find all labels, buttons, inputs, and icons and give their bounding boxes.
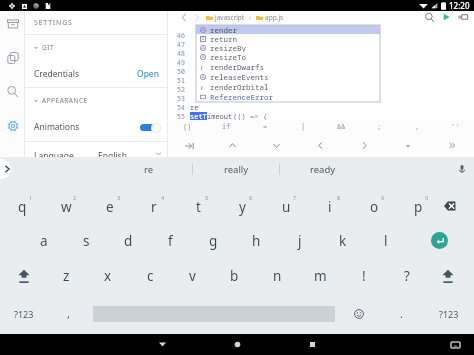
button[interactable]: Backspace xyxy=(444,201,457,211)
button[interactable]: ; xyxy=(360,120,398,134)
button[interactable]: u xyxy=(264,188,308,223)
staticText: 52 xyxy=(177,85,185,94)
button[interactable]: Language xyxy=(25,142,168,157)
button[interactable]: . xyxy=(380,293,423,334)
button[interactable]: Files xyxy=(2,47,23,68)
staticText: , xyxy=(67,306,70,321)
button[interactable]: '' xyxy=(436,120,474,134)
button[interactable]: Search xyxy=(2,81,23,102)
button[interactable]: Shift xyxy=(437,265,459,287)
button[interactable]: Home xyxy=(220,334,254,355)
button[interactable]: More suggestions xyxy=(0,159,11,179)
button[interactable]: w xyxy=(44,188,88,223)
button[interactable]: && xyxy=(322,120,360,134)
button[interactable]: c xyxy=(129,258,171,293)
staticText: e xyxy=(106,198,114,216)
button[interactable]: Credentials xyxy=(25,60,168,87)
button[interactable]: Connect device xyxy=(456,11,469,23)
button[interactable]: b xyxy=(213,258,256,293)
button[interactable]: Recent apps xyxy=(295,334,329,355)
button[interactable]: Tab xyxy=(168,134,211,157)
button[interactable]: APPEARANCE xyxy=(25,88,168,113)
button[interactable]: ! xyxy=(342,258,385,293)
staticText: p xyxy=(414,198,423,216)
staticText: English xyxy=(98,150,127,157)
button[interactable]: f xyxy=(149,223,192,258)
button[interactable]: | xyxy=(284,120,322,134)
button[interactable]: if xyxy=(207,120,246,134)
button[interactable]: Settings xyxy=(2,115,23,136)
button[interactable]: Animations xyxy=(25,113,168,141)
button[interactable]: Back xyxy=(145,334,179,355)
staticText: imeout xyxy=(207,112,233,120)
button[interactable]: Back xyxy=(178,12,189,23)
button[interactable]: ready xyxy=(280,157,366,181)
button[interactable]: l xyxy=(364,223,407,258)
button[interactable]: n xyxy=(256,258,299,293)
button[interactable]: s xyxy=(65,223,107,258)
staticText: really xyxy=(224,163,249,176)
button[interactable]: render xyxy=(196,25,380,34)
button[interactable]: Space xyxy=(90,293,338,334)
button[interactable]: h xyxy=(235,223,278,258)
staticText: ? xyxy=(404,267,410,285)
button[interactable]: really xyxy=(193,157,279,181)
staticText: . xyxy=(400,306,403,321)
button[interactable]: Expand xyxy=(430,134,474,157)
button[interactable]: GIT xyxy=(25,35,168,60)
button[interactable]: ? xyxy=(385,258,428,293)
button[interactable]: q xyxy=(0,188,44,223)
button[interactable]: () xyxy=(168,120,207,134)
staticText: () xyxy=(183,122,192,132)
staticText: 54 xyxy=(177,103,185,112)
button[interactable]: app.js xyxy=(256,13,284,22)
button[interactable]: releaseEvents xyxy=(196,72,380,82)
button[interactable]: Move right xyxy=(342,134,386,157)
button[interactable]: Move down xyxy=(254,134,298,157)
button[interactable]: Voice input xyxy=(455,162,469,176)
button[interactable]: o xyxy=(352,188,396,223)
button[interactable]: r xyxy=(132,188,176,223)
button[interactable]: e xyxy=(88,188,132,223)
button[interactable]: a xyxy=(23,223,65,258)
button[interactable]: Run xyxy=(440,11,453,23)
button[interactable]: m xyxy=(299,258,342,293)
button[interactable]: javascript xyxy=(206,13,245,22)
button[interactable]: j xyxy=(278,223,321,258)
button[interactable]: Forward xyxy=(191,12,202,23)
button[interactable]: Move left xyxy=(298,134,342,157)
button[interactable]: , xyxy=(398,120,436,134)
button[interactable]: g xyxy=(192,223,235,258)
button[interactable]: {} xyxy=(196,82,380,92)
button[interactable]: Enter xyxy=(431,232,448,249)
button[interactable]: Shift xyxy=(13,265,35,287)
staticText: f xyxy=(168,232,173,250)
button[interactable]: d xyxy=(107,223,149,258)
button[interactable]: return xyxy=(196,34,380,43)
button[interactable]: = xyxy=(246,120,284,134)
staticText: Language xyxy=(34,150,74,157)
button[interactable]: z xyxy=(45,258,87,293)
button[interactable]: Project xyxy=(2,13,23,34)
button[interactable]: ?123 xyxy=(0,293,47,334)
button[interactable]: t xyxy=(176,188,220,223)
button[interactable]: resizeBy xyxy=(196,43,380,52)
button[interactable]: x xyxy=(87,258,129,293)
button[interactable]: ?123 xyxy=(423,293,474,334)
button[interactable]: y xyxy=(220,188,264,223)
staticText: Open xyxy=(137,68,159,80)
button[interactable]: resizeTo xyxy=(196,52,380,62)
button[interactable]: Search xyxy=(423,11,436,23)
button[interactable]: {} xyxy=(196,62,380,72)
button[interactable]: k xyxy=(321,223,364,258)
button[interactable]: Switch keyboard xyxy=(448,338,462,352)
button[interactable]: More xyxy=(386,134,430,157)
button[interactable]: v xyxy=(171,258,213,293)
button[interactable]: p xyxy=(396,188,440,223)
button[interactable]: ReferenceError xyxy=(196,92,380,102)
button[interactable]: , xyxy=(47,293,90,334)
button[interactable]: re xyxy=(105,157,192,181)
button[interactable]: Move up xyxy=(211,134,254,157)
button[interactable]: Emoji xyxy=(338,293,380,334)
button[interactable]: i xyxy=(308,188,352,223)
